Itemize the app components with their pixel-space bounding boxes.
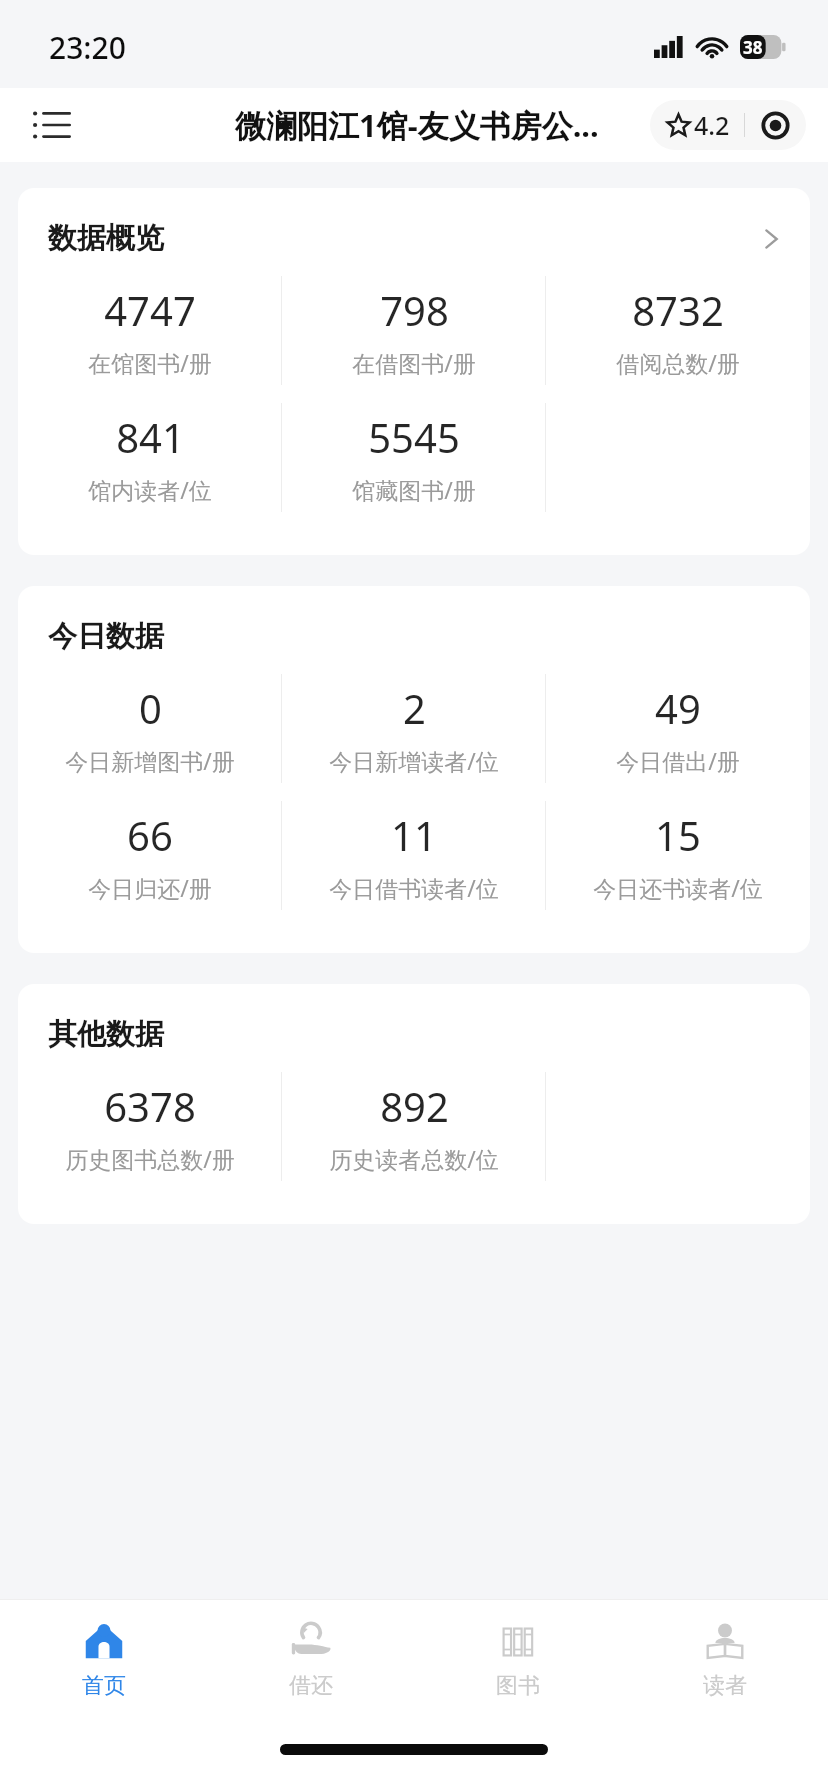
staticText: 今日借书读者/位 (329, 872, 499, 903)
button[interactable]: More (745, 100, 806, 150)
staticText: 0 (139, 681, 162, 735)
staticText: 今日数据 (48, 618, 164, 655)
button[interactable]: 图书 (414, 1600, 621, 1718)
button[interactable]: 今日数据 (18, 586, 810, 953)
staticText: 38 (743, 36, 763, 59)
staticText: 借阅总数/册 (616, 347, 740, 378)
staticText: 23:20 (49, 27, 126, 68)
button[interactable]: 其他数据 (18, 984, 810, 1224)
staticText: 数据概览 (48, 220, 164, 257)
staticText: 15 (655, 808, 701, 862)
staticText: 借还 (289, 1672, 333, 1700)
staticText: 今日还书读者/位 (593, 872, 763, 903)
staticText: 今日新增读者/位 (329, 745, 499, 776)
staticText: 在借图书/册 (352, 347, 476, 378)
staticText: 66 (127, 808, 173, 862)
button[interactable]: 借还 (207, 1600, 414, 1718)
staticText: 微澜阳江1馆-友义书房公... (235, 104, 599, 146)
staticText: 5545 (368, 410, 460, 464)
staticText: 841 (116, 410, 185, 464)
staticText: 馆藏图书/册 (352, 474, 476, 505)
staticText: 892 (380, 1079, 449, 1133)
staticText: 历史读者总数/位 (329, 1143, 499, 1174)
staticText: 今日新增图书/册 (65, 745, 235, 776)
button[interactable]: 首页 (0, 1600, 207, 1718)
button[interactable]: 读者 (621, 1600, 828, 1718)
staticText: 首页 (82, 1672, 126, 1700)
staticText: 其他数据 (48, 1016, 164, 1053)
button[interactable]: Menu (24, 97, 80, 153)
staticText: 4.2 (694, 108, 730, 142)
staticText: 4747 (104, 283, 196, 337)
staticText: 读者 (703, 1672, 747, 1700)
button[interactable]: 数据概览 (18, 188, 810, 555)
staticText: 6378 (104, 1079, 196, 1133)
staticText: 2 (403, 681, 426, 735)
staticText: 11 (391, 808, 437, 862)
staticText: 今日借出/册 (616, 745, 740, 776)
staticText: 49 (655, 681, 701, 735)
staticText: 馆内读者/位 (88, 474, 212, 505)
staticText: 798 (380, 283, 449, 337)
staticText: 历史图书总数/册 (65, 1143, 235, 1174)
staticText: 图书 (496, 1672, 540, 1700)
staticText: 在馆图书/册 (88, 347, 212, 378)
staticText: 今日归还/册 (88, 872, 212, 903)
staticText: 8732 (632, 283, 724, 337)
button[interactable]: 4.2 (650, 100, 744, 150)
